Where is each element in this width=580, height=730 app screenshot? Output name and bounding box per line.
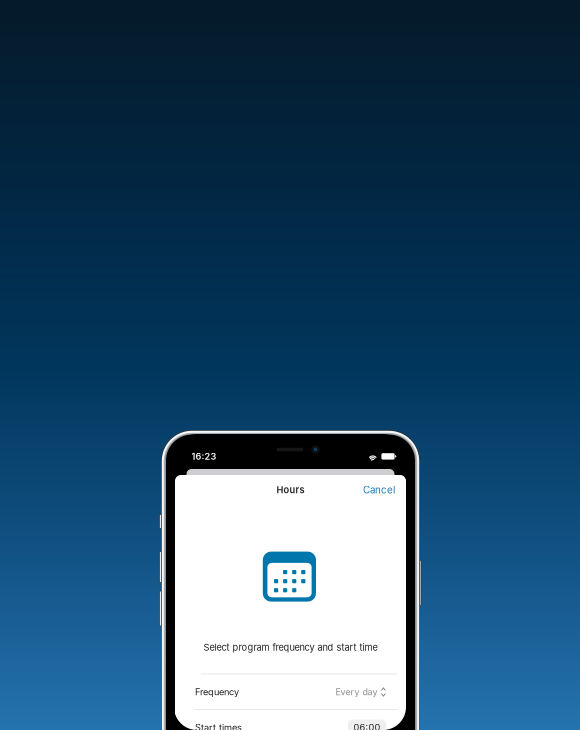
staticText: Start times xyxy=(195,722,242,730)
button[interactable]: 06:00 xyxy=(348,719,386,730)
staticText: Select program frequency and start time xyxy=(203,642,377,653)
staticText: Every day xyxy=(335,687,377,697)
button[interactable]: Cancel xyxy=(358,480,400,500)
staticText: Cancel xyxy=(363,484,395,496)
staticText: Frequency xyxy=(195,686,239,698)
button[interactable]: Frequency xyxy=(175,675,406,709)
staticText: 06:00 xyxy=(353,722,380,730)
staticText: Hours xyxy=(276,484,304,495)
staticText: 16:23 xyxy=(191,451,216,462)
